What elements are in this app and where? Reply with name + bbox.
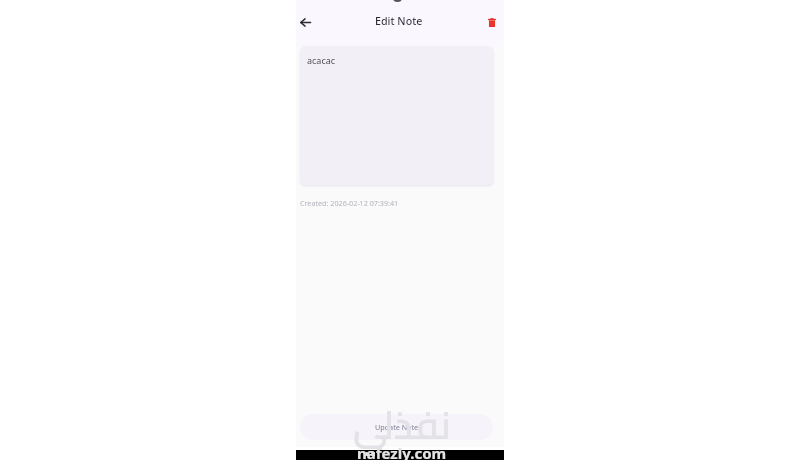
button[interactable]: Update Note [300,414,493,440]
button[interactable]: Back [294,11,316,33]
staticText: نفذلي [353,388,451,458]
staticText: Edit Note [375,14,423,29]
button[interactable]: Delete note [481,11,503,33]
button[interactable]: acacac [300,46,493,185]
staticText: Created: 2026-02-12 07:39:41 [300,198,399,208]
staticText: acacac [307,54,336,66]
staticText: nafezly.com [357,443,447,460]
staticText: Update Note [375,422,419,432]
